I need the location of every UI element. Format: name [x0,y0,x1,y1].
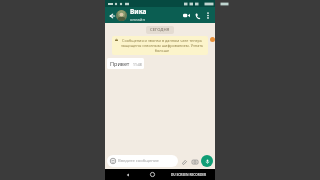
button[interactable]: Вика [130,7,181,23]
button[interactable]: Video call [181,10,192,21]
staticText: 11:48 [133,62,142,67]
button[interactable]: Back [107,11,116,20]
button[interactable]: Record voice message [201,155,213,167]
button[interactable]: Camera [189,156,200,167]
staticText: Вика [130,7,147,16]
button[interactable]: Home [148,170,157,179]
button[interactable]: Attach [178,156,189,167]
staticText: Привет [110,60,130,67]
staticText: Введите сообщение [118,158,159,164]
button[interactable]: More options [203,11,212,20]
button[interactable]: Введите сообщение [107,155,178,167]
button[interactable]: Back [123,170,132,179]
staticText: DU SCREEN RECORDER [171,173,207,177]
button[interactable]: Call [192,10,203,21]
staticText: Сообщения и звонки в данном чате теперь … [119,38,205,53]
staticText: онлайн [130,17,146,23]
staticText: СЕГОДНЯ [150,27,170,33]
